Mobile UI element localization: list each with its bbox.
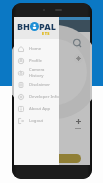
staticText: PAL bbox=[39, 20, 57, 32]
staticText: ETS bbox=[42, 31, 50, 36]
staticText: Logout bbox=[29, 118, 44, 124]
button[interactable]: Logout bbox=[14, 115, 59, 127]
staticText: Home bbox=[29, 46, 42, 52]
button[interactable]: Home bbox=[14, 43, 59, 55]
staticText: About App bbox=[29, 106, 51, 112]
staticText: BH bbox=[17, 20, 30, 32]
staticText: Disclaimer bbox=[29, 82, 51, 88]
button[interactable]: Search bbox=[72, 38, 83, 49]
button[interactable]: Profile bbox=[14, 55, 59, 67]
button[interactable]: My location bbox=[74, 54, 83, 63]
staticText: Camera History bbox=[29, 67, 59, 79]
staticText: Developer Info bbox=[29, 94, 59, 100]
button[interactable]: About App bbox=[14, 103, 59, 115]
button[interactable]: Developer Info bbox=[14, 91, 59, 103]
button[interactable]: Re-Build bbox=[17, 154, 81, 163]
staticText: Profile bbox=[29, 58, 42, 64]
button[interactable]: Disclaimer bbox=[14, 79, 59, 91]
button[interactable]: Zoom in bbox=[75, 118, 82, 125]
button[interactable]: Camera History bbox=[14, 67, 59, 79]
